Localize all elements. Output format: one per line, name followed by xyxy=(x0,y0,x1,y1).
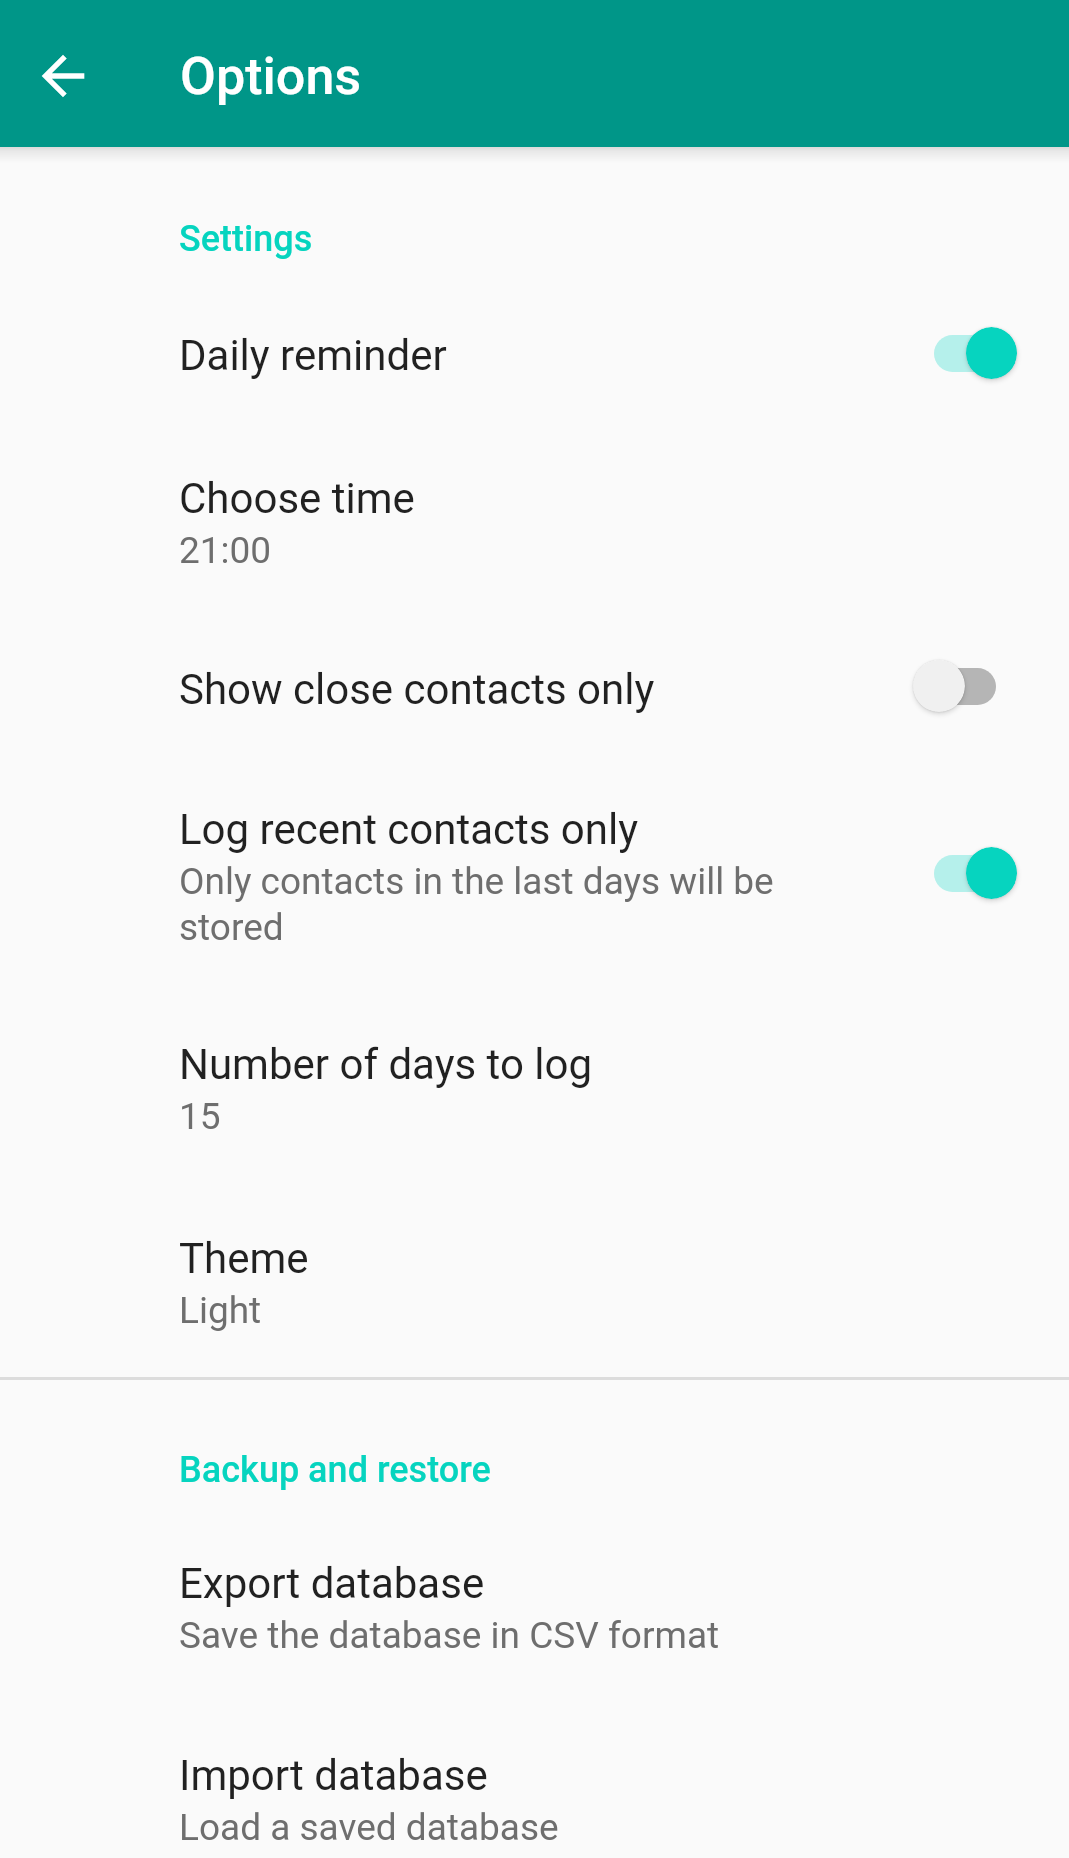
staticText: 15 xyxy=(179,1093,221,1139)
button[interactable]: Number of days to log xyxy=(0,950,1069,1139)
button[interactable]: Switch on xyxy=(908,842,1017,904)
button[interactable]: Log recent contacts only xyxy=(0,720,1069,950)
staticText: Light xyxy=(179,1287,262,1333)
button[interactable]: Switch on xyxy=(908,322,1017,384)
staticText: Daily reminder xyxy=(179,331,447,380)
staticText: Number of days to log xyxy=(179,1040,593,1089)
button[interactable]: Theme xyxy=(0,1139,1069,1333)
staticText: Theme xyxy=(179,1234,309,1283)
staticText: Options xyxy=(180,46,362,107)
button[interactable]: Choose time xyxy=(0,386,1069,573)
staticText: Choose time xyxy=(179,474,415,523)
button[interactable]: Import database xyxy=(0,1658,1069,1850)
staticText: Load a saved database xyxy=(179,1804,559,1850)
staticText: 21:00 xyxy=(179,527,272,573)
staticText: Only contacts in the last days will be s… xyxy=(179,858,838,950)
staticText: Backup and restore xyxy=(179,1448,1069,1491)
button[interactable]: Show close contacts only xyxy=(0,573,1069,720)
staticText: Settings xyxy=(179,217,1069,260)
staticText: Show close contacts only xyxy=(179,665,655,714)
staticText: Log recent contacts only xyxy=(179,805,639,854)
staticText: Export database xyxy=(179,1559,485,1608)
button[interactable]: Daily reminder xyxy=(0,260,1069,386)
button[interactable]: Export database xyxy=(0,1491,1069,1658)
button[interactable]: Switch off xyxy=(908,655,1017,717)
staticText: Import database xyxy=(179,1751,488,1800)
button[interactable]: Navigate up xyxy=(14,27,112,125)
staticText: Save the database in CSV format xyxy=(179,1612,720,1658)
